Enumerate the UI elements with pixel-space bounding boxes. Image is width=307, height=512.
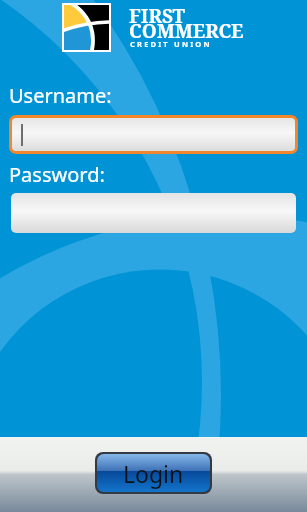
staticText: Username: — [9, 82, 112, 109]
button[interactable]: Login — [97, 454, 210, 492]
staticText: COMMERCE — [129, 18, 244, 44]
button[interactable] — [11, 193, 296, 233]
button[interactable] — [12, 118, 295, 151]
staticText: CREDIT UNION — [130, 39, 212, 49]
staticText: Login — [123, 458, 184, 489]
staticText: Password: — [9, 161, 105, 188]
staticText: FIRST — [129, 3, 185, 29]
